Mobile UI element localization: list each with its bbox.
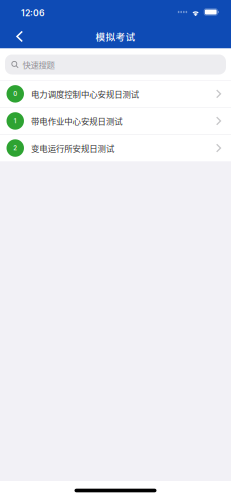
staticText: 快速搜题: [22, 58, 54, 71]
staticText: 0: [13, 90, 17, 97]
staticText: 2: [13, 144, 17, 152]
staticText: 1: [14, 117, 17, 125]
button[interactable]: 快速搜题: [5, 54, 226, 74]
staticText: 带电作业中心安规日测试: [31, 115, 122, 127]
staticText: 12:06: [21, 8, 45, 18]
staticText: 变电运行所安规日测试: [31, 142, 114, 154]
button[interactable]: 0: [0, 81, 231, 107]
staticText: 模拟考试: [95, 29, 135, 43]
staticText: 电力调度控制中心安规日测试: [31, 88, 139, 100]
button[interactable]: 1: [0, 108, 231, 134]
button[interactable]: 2: [0, 135, 231, 161]
button[interactable]: Back: [6, 24, 32, 48]
